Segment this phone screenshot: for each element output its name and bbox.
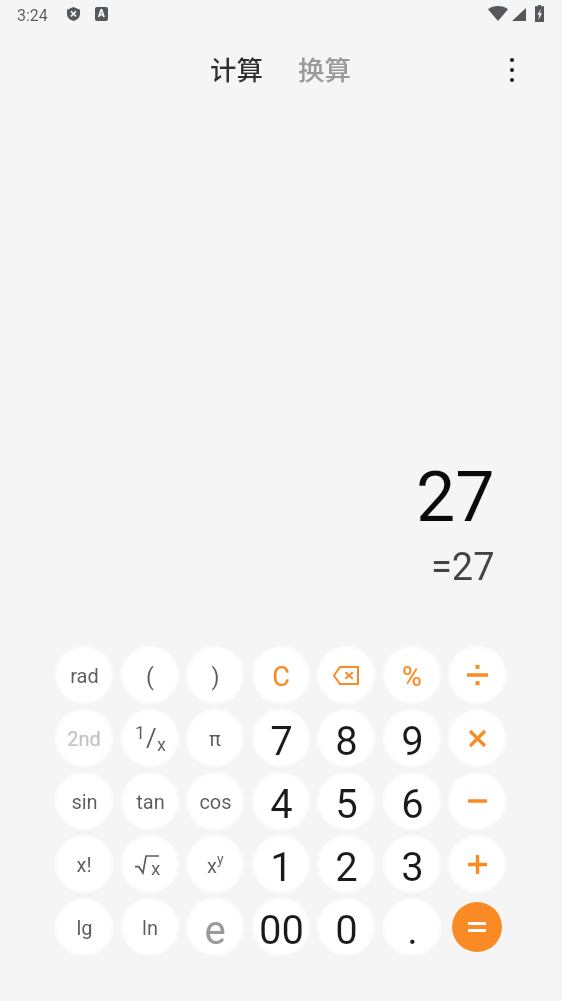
button[interactable]: (: [124, 649, 176, 701]
staticText: x: [207, 854, 217, 877]
button[interactable]: ): [189, 649, 241, 701]
button[interactable]: 6: [386, 775, 438, 827]
button[interactable]: e: [189, 901, 241, 953]
button[interactable]: tan: [124, 775, 176, 827]
staticText: (: [146, 664, 154, 691]
button[interactable]: .: [386, 901, 438, 953]
staticText: 0: [335, 907, 358, 953]
button[interactable]: Equals: [452, 902, 502, 952]
staticText: =27: [431, 545, 495, 590]
button[interactable]: 7: [255, 712, 307, 764]
button[interactable]: 1: [124, 712, 176, 764]
button[interactable]: 0: [320, 901, 372, 953]
staticText: 7: [270, 718, 293, 764]
staticText: 4: [270, 781, 293, 827]
staticText: A: [98, 8, 105, 20]
button[interactable]: 9: [386, 712, 438, 764]
staticText: 3: [401, 844, 424, 890]
staticText: 2nd: [67, 727, 101, 750]
staticText: rad: [70, 664, 99, 687]
staticText: 27: [416, 456, 495, 538]
staticText: C: [272, 661, 290, 693]
button[interactable]: More options: [492, 49, 532, 89]
staticText: 6: [401, 781, 424, 827]
button[interactable]: Subtract: [451, 775, 503, 827]
button[interactable]: ln: [124, 901, 176, 953]
staticText: lg: [76, 916, 93, 939]
staticText: x!: [76, 853, 92, 876]
button[interactable]: 8: [320, 712, 372, 764]
staticText: 8: [335, 718, 358, 764]
button[interactable]: Multiply: [451, 712, 503, 764]
staticText: .: [407, 907, 418, 953]
button[interactable]: sin: [58, 775, 110, 827]
button[interactable]: 5: [320, 775, 372, 827]
button[interactable]: C: [255, 649, 307, 701]
button[interactable]: 2: [320, 838, 372, 890]
staticText: 2: [335, 844, 358, 890]
button[interactable]: Add: [451, 838, 503, 890]
staticText: 5: [335, 781, 358, 827]
staticText: 换算: [298, 49, 351, 85]
staticText: %: [402, 661, 422, 693]
button[interactable]: π: [189, 712, 241, 764]
staticText: y: [217, 851, 224, 867]
button[interactable]: rad: [58, 649, 110, 701]
other: Backspace: [333, 666, 359, 685]
button[interactable]: cos: [189, 775, 241, 827]
button[interactable]: Backspace: [320, 649, 372, 701]
staticText: 1: [135, 722, 146, 743]
other: Divide: [467, 664, 488, 686]
staticText: e: [204, 907, 226, 953]
other: Subtract: [468, 799, 487, 803]
staticText: 9: [401, 718, 424, 764]
button[interactable]: 换算: [288, 39, 361, 95]
staticText: x: [157, 734, 166, 755]
other: Add: [468, 855, 487, 874]
staticText: ): [211, 664, 220, 691]
other: Multiply: [470, 731, 485, 746]
button[interactable]: x!: [58, 838, 110, 890]
button[interactable]: x: [124, 838, 176, 890]
staticText: 3:24: [17, 6, 48, 25]
button[interactable]: 00: [255, 901, 307, 953]
staticText: cos: [199, 790, 232, 813]
staticText: tan: [136, 790, 165, 813]
staticText: π: [209, 727, 221, 750]
button[interactable]: 2nd: [58, 712, 110, 764]
staticText: 1: [270, 844, 293, 890]
staticText: 计算: [210, 49, 263, 85]
button[interactable]: x: [189, 838, 241, 890]
staticText: 00: [259, 907, 304, 953]
button[interactable]: lg: [58, 901, 110, 953]
staticText: /: [146, 723, 157, 753]
button[interactable]: 计算: [200, 39, 273, 95]
button[interactable]: %: [386, 649, 438, 701]
staticText: x: [151, 857, 161, 879]
button[interactable]: 3: [386, 838, 438, 890]
button[interactable]: 1: [255, 838, 307, 890]
button[interactable]: 4: [255, 775, 307, 827]
button[interactable]: Divide: [451, 649, 503, 701]
staticText: sin: [71, 790, 98, 813]
staticText: ln: [142, 916, 158, 939]
